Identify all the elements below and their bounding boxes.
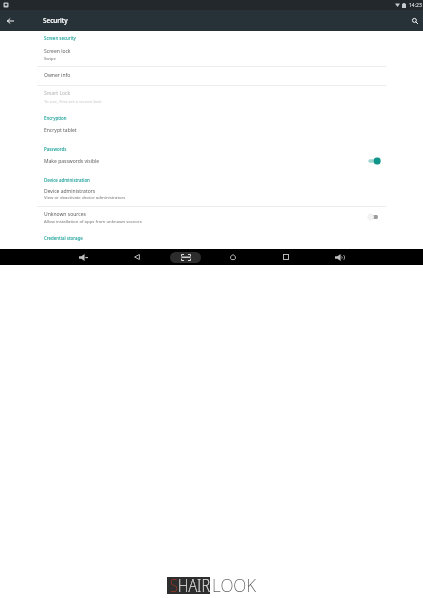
staticText: Credential storage xyxy=(44,235,83,241)
button[interactable]: Unknown sources xyxy=(0,207,423,228)
staticText: Encrypt tablet xyxy=(44,127,77,134)
staticText: Screen lock xyxy=(44,48,71,55)
button[interactable]: Make passwords visible xyxy=(0,154,423,169)
button[interactable]: Home xyxy=(220,249,246,265)
button[interactable]: Screen lock xyxy=(0,43,423,66)
staticText: Smart Lock xyxy=(44,90,71,97)
button[interactable]: Owner info xyxy=(0,67,423,85)
button[interactable]: Volume down xyxy=(70,249,96,265)
staticText: LOOK xyxy=(212,573,257,598)
staticText: Allow installation of apps from unknown … xyxy=(44,218,142,224)
staticText: Security xyxy=(43,16,68,25)
staticText: Owner info xyxy=(44,72,71,79)
staticText: S xyxy=(170,573,178,598)
staticText: Passwords xyxy=(44,146,67,152)
button[interactable]: Back xyxy=(124,249,150,265)
staticText: Encryption xyxy=(44,115,67,121)
staticText: Screen security xyxy=(44,35,76,41)
staticText: Unknown sources xyxy=(44,211,86,218)
staticText: To use, first set a screen lock xyxy=(44,98,102,104)
staticText: Swipe xyxy=(44,55,56,61)
button[interactable]: Search xyxy=(407,12,423,29)
button[interactable]: Screenshot xyxy=(170,252,201,263)
button[interactable]: Recents xyxy=(273,249,299,265)
button[interactable]: Smart Lock xyxy=(0,86,423,109)
button[interactable]: Volume up xyxy=(327,249,353,265)
staticText: View or deactivate device administrators xyxy=(44,194,126,200)
button[interactable]: Encrypt tablet xyxy=(0,124,423,138)
staticText: Device administration xyxy=(44,177,90,183)
button[interactable]: Back xyxy=(2,12,18,29)
button[interactable]: Device administrators xyxy=(0,185,423,206)
staticText: HAIR xyxy=(178,573,210,598)
staticText: Make passwords visible xyxy=(44,158,100,165)
staticText: Device administrators xyxy=(44,188,96,195)
staticText: 14:23 xyxy=(409,2,422,9)
